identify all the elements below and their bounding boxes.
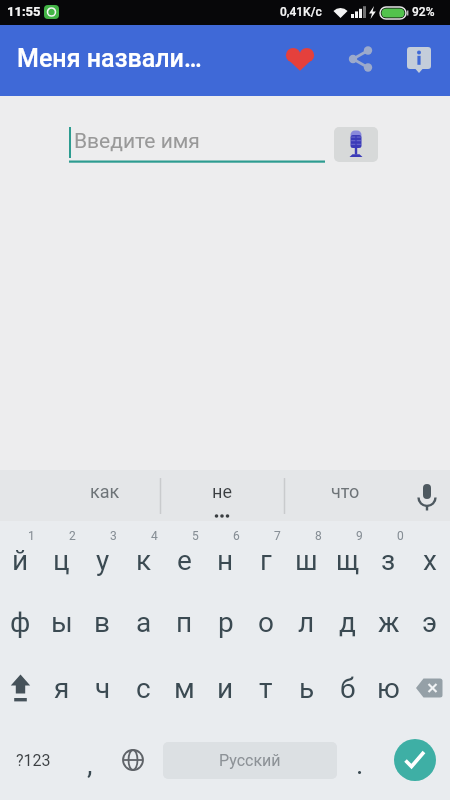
staticText: 2 — [69, 529, 76, 543]
staticText: 0 — [397, 529, 404, 543]
staticText: г — [260, 544, 272, 577]
button[interactable]: а — [123, 595, 164, 649]
button[interactable]: как — [50, 474, 160, 508]
button[interactable]: о — [245, 595, 286, 649]
button[interactable]: н — [205, 537, 246, 583]
button[interactable] — [0, 661, 41, 715]
staticText: п — [176, 606, 193, 639]
button[interactable] — [334, 127, 378, 162]
button[interactable]: у — [82, 537, 123, 583]
button[interactable]: ч — [82, 661, 123, 715]
button[interactable]: т — [245, 661, 286, 715]
staticText: как — [90, 481, 120, 502]
button[interactable]: что — [290, 474, 400, 508]
button[interactable]: в — [82, 595, 123, 649]
staticText: ь — [299, 672, 315, 705]
staticText: что — [331, 481, 360, 502]
staticText: х — [423, 544, 437, 577]
staticText: у — [96, 544, 110, 577]
staticText: Введите имя — [74, 129, 200, 154]
button[interactable]: л — [286, 595, 327, 649]
staticText: ч — [95, 672, 111, 705]
button[interactable]: . — [340, 739, 380, 789]
staticText: с — [136, 672, 151, 705]
staticText: а — [136, 606, 152, 639]
button[interactable]: ф — [0, 595, 41, 649]
button[interactable]: ю — [368, 661, 409, 715]
staticText: т — [259, 672, 273, 705]
staticText: и — [217, 672, 234, 705]
button[interactable]: з — [368, 537, 409, 583]
button[interactable]: ж — [368, 595, 409, 649]
staticText: э — [422, 606, 438, 639]
staticText: м — [174, 672, 195, 705]
staticText: 0,41K/c — [280, 5, 322, 19]
staticText: б — [340, 672, 356, 705]
button[interactable]: не — [167, 474, 277, 508]
button[interactable]: ц — [41, 537, 82, 583]
staticText: р — [218, 606, 234, 639]
button[interactable]: с — [123, 661, 164, 715]
staticText: не — [212, 481, 232, 502]
button[interactable] — [401, 41, 437, 77]
button[interactable]: д — [327, 595, 368, 649]
button[interactable] — [409, 661, 450, 715]
button[interactable] — [405, 475, 445, 515]
staticText: к — [136, 544, 152, 577]
staticText: Русский — [219, 751, 281, 770]
staticText: ж — [378, 606, 400, 639]
staticText: д — [339, 606, 356, 639]
staticText: 8 — [315, 529, 322, 543]
button[interactable]: Русский — [163, 742, 337, 779]
staticText: е — [177, 544, 192, 577]
staticText: в — [94, 606, 111, 639]
button[interactable]: р — [205, 595, 246, 649]
staticText: ы — [51, 606, 73, 639]
staticText: л — [298, 606, 315, 639]
staticText: 11:55 — [7, 4, 41, 19]
staticText: 7 — [274, 529, 281, 543]
staticText: ?123 — [16, 751, 51, 770]
staticText: щ — [336, 544, 360, 577]
button[interactable]: к — [123, 537, 164, 583]
button[interactable]: ь — [286, 661, 327, 715]
staticText: ю — [377, 672, 400, 705]
staticText: 3 — [110, 529, 117, 543]
button[interactable]: ы — [41, 595, 82, 649]
staticText: 9 — [356, 529, 363, 543]
button[interactable]: щ — [327, 537, 368, 583]
button[interactable]: е — [164, 537, 205, 583]
button[interactable]: я — [41, 661, 82, 715]
staticText: 5 — [192, 529, 199, 543]
button[interactable] — [394, 739, 436, 781]
staticText: о — [258, 606, 274, 639]
staticText: н — [217, 544, 234, 577]
staticText: й — [12, 544, 29, 577]
button[interactable]: г — [245, 537, 286, 583]
button[interactable]: ?123 — [2, 732, 64, 788]
staticText: ф — [10, 606, 31, 639]
button[interactable]: х — [409, 537, 450, 583]
button[interactable]: и — [205, 661, 246, 715]
staticText: ц — [53, 544, 70, 577]
staticText: ш — [295, 544, 318, 577]
staticText: 6 — [233, 529, 240, 543]
staticText: я — [54, 672, 70, 705]
staticText: Меня назвали… — [17, 44, 202, 73]
button[interactable]: й — [0, 537, 41, 583]
button[interactable] — [282, 41, 318, 77]
button[interactable]: б — [327, 661, 368, 715]
staticText: з — [381, 544, 396, 577]
staticText: 92% — [412, 5, 435, 19]
staticText: 4 — [151, 529, 158, 543]
button[interactable] — [342, 41, 378, 77]
staticText: . — [356, 748, 364, 781]
button[interactable]: м — [164, 661, 205, 715]
button[interactable]: ш — [286, 537, 327, 583]
staticText: , — [87, 748, 93, 781]
button[interactable] — [113, 740, 153, 780]
button[interactable] — [60, 115, 330, 170]
button[interactable]: э — [409, 595, 450, 649]
button[interactable]: , — [70, 739, 110, 789]
button[interactable]: п — [164, 595, 205, 649]
